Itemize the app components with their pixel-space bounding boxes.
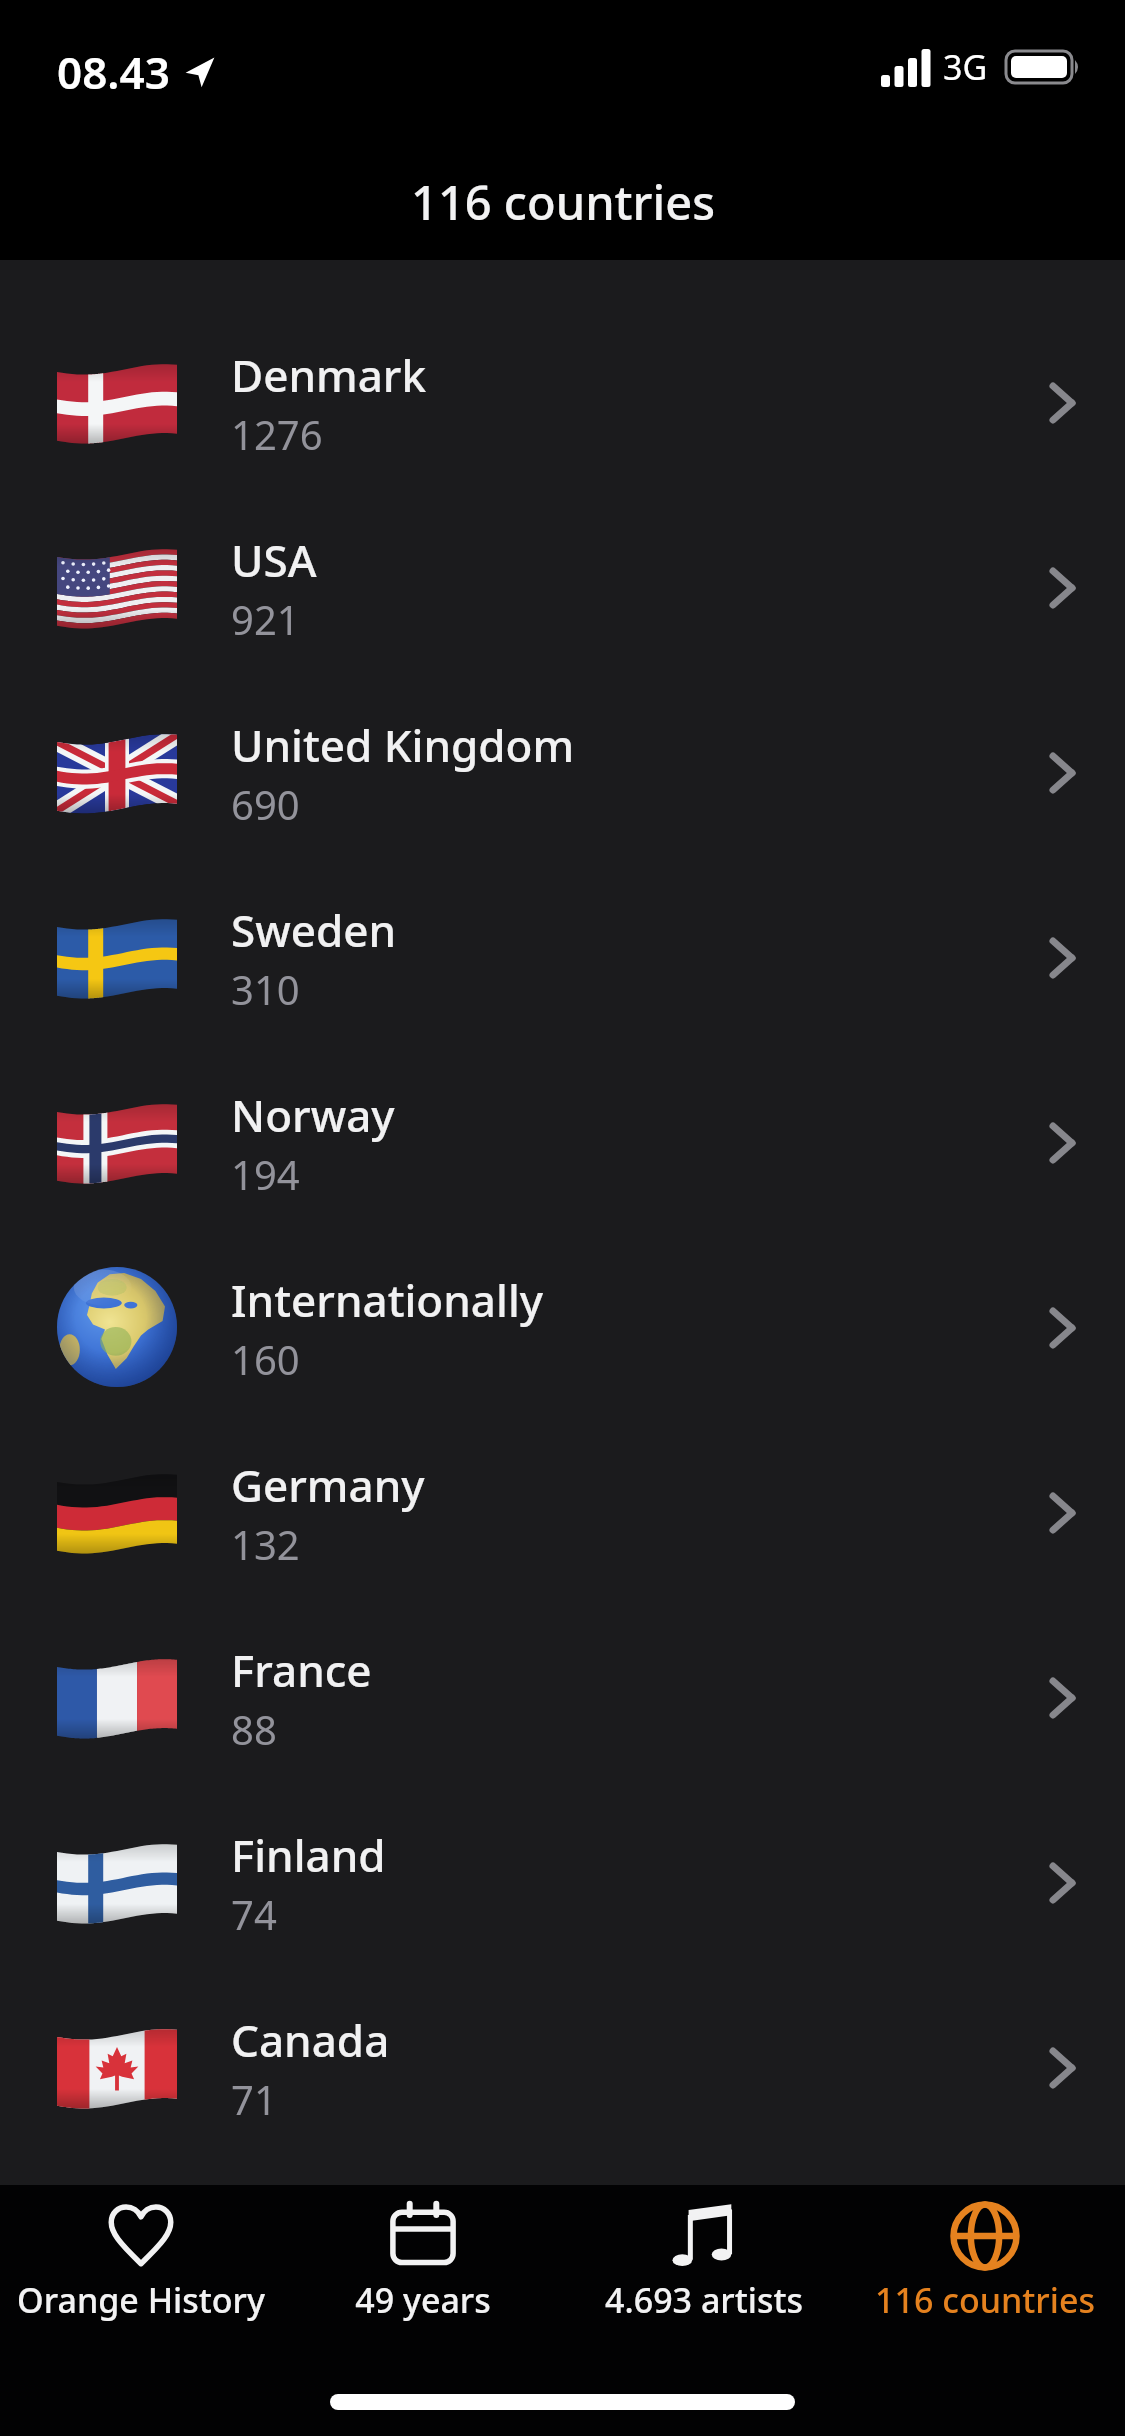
staticText: 3G	[943, 44, 988, 90]
staticText: 1276	[231, 407, 323, 461]
button[interactable]: Finland	[0, 1790, 1125, 1975]
staticText: 116 countries	[875, 2277, 1095, 2323]
staticText: France	[231, 1640, 372, 1700]
staticText: 49 years	[355, 2277, 491, 2323]
staticText: 132	[231, 1517, 300, 1571]
button[interactable]: Norway	[0, 1050, 1125, 1235]
staticText: 88	[231, 1702, 277, 1756]
button[interactable]: United Kingdom	[0, 680, 1125, 865]
staticText: United Kingdom	[231, 715, 575, 775]
button[interactable]: USA	[0, 495, 1125, 680]
button[interactable]: France	[0, 1605, 1125, 1790]
staticText: Canada	[231, 2010, 390, 2070]
button[interactable]: 116 countries	[844, 2201, 1125, 2323]
staticText: Orange History	[17, 2277, 265, 2323]
staticText: 74	[231, 1887, 277, 1941]
button[interactable]: Denmark	[0, 310, 1125, 495]
button[interactable]: Germany	[0, 1420, 1125, 1605]
staticText: 921	[231, 592, 300, 646]
staticText: 690	[231, 777, 300, 831]
staticText: Internationally	[231, 1270, 544, 1330]
staticText: Sweden	[231, 900, 397, 960]
button[interactable]: Internationally	[0, 1235, 1125, 1420]
staticText: 4.693 artists	[605, 2277, 803, 2323]
button[interactable]: 4.693 artists	[563, 2201, 844, 2323]
button[interactable]: Canada	[0, 1975, 1125, 2160]
staticText: 116 countries	[411, 170, 715, 234]
staticText: 160	[231, 1332, 300, 1386]
staticText: Germany	[231, 1455, 425, 1515]
staticText: Norway	[231, 1085, 395, 1145]
button[interactable]: 49 years	[282, 2201, 563, 2323]
staticText: Finland	[231, 1825, 386, 1885]
staticText: 08.43	[57, 42, 170, 102]
staticText: USA	[231, 530, 317, 590]
button[interactable]: Sweden	[0, 865, 1125, 1050]
staticText: 71	[231, 2072, 277, 2126]
staticText: 194	[231, 1147, 300, 1201]
staticText: 310	[231, 962, 300, 1016]
staticText: Denmark	[231, 345, 427, 405]
button[interactable]: Orange History	[0, 2201, 282, 2323]
